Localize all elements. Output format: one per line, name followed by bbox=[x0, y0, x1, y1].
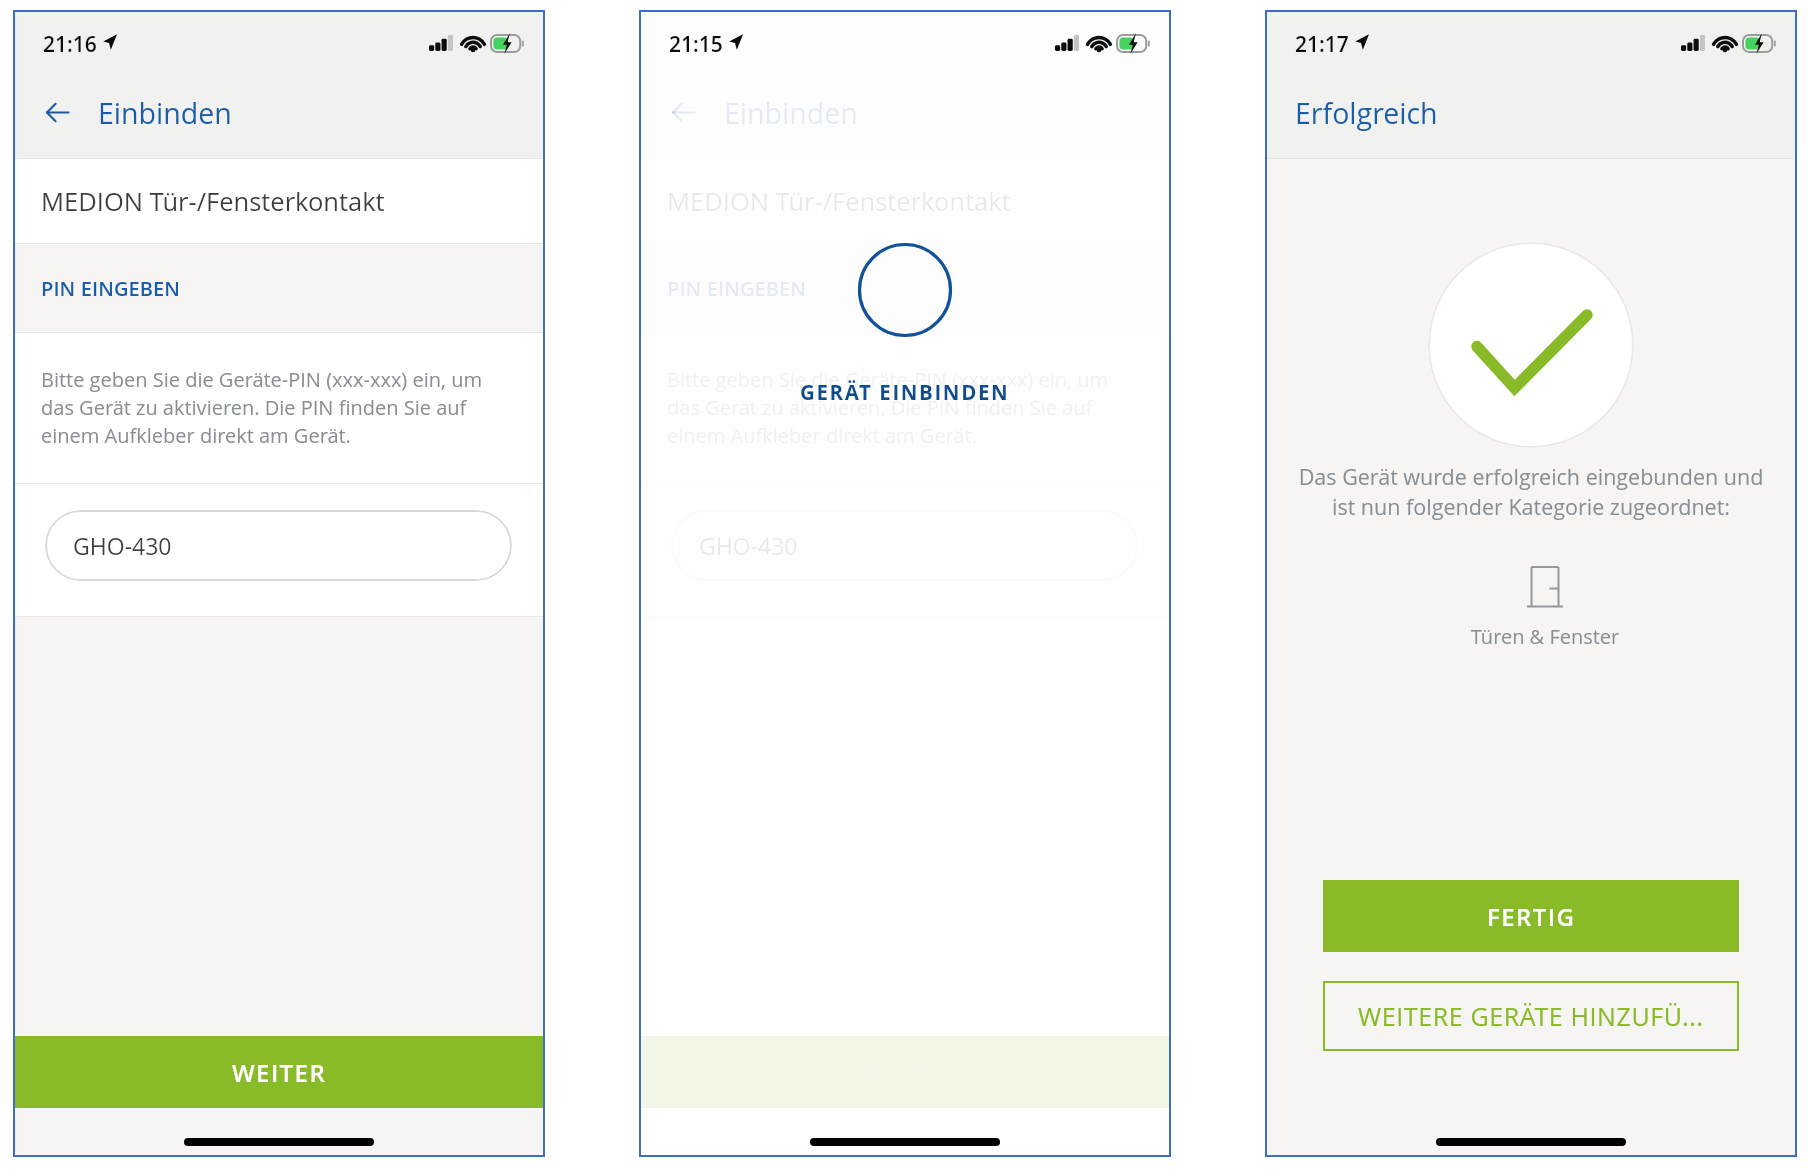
staticText: MEDION Tür-/Fensterkontakt bbox=[41, 184, 385, 219]
staticText: Das Gerät wurde erfolgreich eingebunden … bbox=[1267, 462, 1795, 521]
staticText: GHO-430 bbox=[699, 530, 798, 561]
button[interactable]: GHO-430 bbox=[45, 510, 512, 581]
staticText: MEDION Tür-/Fensterkontakt bbox=[667, 184, 1011, 219]
staticText: FERTIG bbox=[1487, 900, 1576, 933]
button[interactable]: FERTIG bbox=[1323, 880, 1739, 952]
staticText: Türen & Fenster bbox=[1281, 623, 1808, 650]
staticText: Bitte geben Sie die Geräte-PIN (xxx-xxx)… bbox=[667, 366, 1138, 449]
staticText: 21:17 bbox=[1295, 30, 1349, 59]
staticText: 21:15 bbox=[669, 30, 723, 59]
button[interactable]: WEITER bbox=[15, 1036, 543, 1108]
staticText: WEITERE GERÄTE HINZUFÜ... bbox=[1358, 999, 1704, 1033]
staticText: 21:16 bbox=[43, 30, 97, 59]
staticText: GHO-430 bbox=[73, 530, 172, 561]
button[interactable]: Back bbox=[35, 90, 79, 134]
staticText: GERÄT EINBINDEN bbox=[800, 378, 1010, 406]
staticText: PIN EINGEBEN bbox=[667, 275, 807, 302]
button[interactable]: Back bbox=[661, 90, 705, 134]
staticText: 21:15 bbox=[669, 30, 723, 59]
staticText: Bitte geben Sie die Geräte-PIN (xxx-xxx)… bbox=[41, 366, 512, 449]
button[interactable]: MEDION Tür-/Fensterkontakt bbox=[641, 159, 1169, 243]
button[interactable]: WEITERE GERÄTE HINZUFÜ... bbox=[1323, 981, 1739, 1051]
staticText: Einbinden bbox=[98, 94, 232, 133]
staticText: WEITER bbox=[232, 1056, 327, 1089]
staticText: Einbinden bbox=[724, 94, 858, 133]
staticText: PIN EINGEBEN bbox=[41, 275, 181, 302]
staticText: Erfolgreich bbox=[1295, 94, 1438, 133]
button[interactable]: MEDION Tür-/Fensterkontakt bbox=[15, 159, 543, 243]
